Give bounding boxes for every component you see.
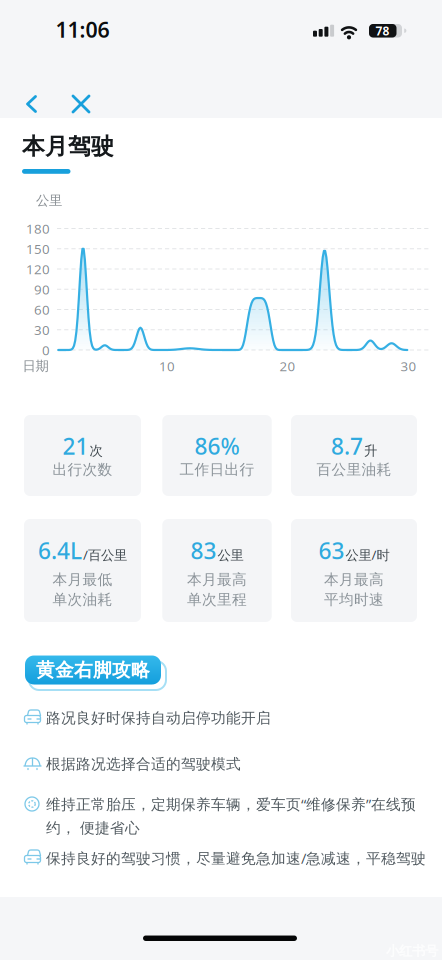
staticText: 30 [400, 357, 416, 375]
staticText: 90 [34, 280, 50, 298]
staticText: 本月最高 [187, 570, 247, 588]
staticText: 20 [279, 357, 295, 375]
staticText: 百公里油耗 [316, 460, 391, 478]
staticText: 公里 [36, 192, 62, 209]
staticText: 公里/时 [345, 546, 389, 563]
staticText: 83 [190, 535, 216, 565]
staticText: 日期 [22, 358, 48, 374]
staticText: 工作日出行 [179, 460, 254, 478]
staticText: 路况良好时保持自动启停功能开启 [46, 709, 271, 727]
staticText: 150 [26, 240, 50, 258]
staticText: 公里 [217, 547, 243, 564]
staticText: 11:06 [55, 15, 109, 44]
staticText: 120 [26, 260, 50, 278]
staticText: 保持良好的驾驶习惯，尽量避免急加速/急减速，平稳驾驶 [46, 848, 426, 868]
staticText: 升 [364, 443, 377, 459]
staticText: 86% [194, 431, 239, 461]
button[interactable]: 黄金右脚攻略 [25, 655, 161, 684]
staticText: 约， 便捷省心 [46, 819, 140, 837]
staticText: 63 [318, 535, 344, 565]
button[interactable]: Close [71, 94, 90, 113]
staticText: /百公里 [83, 546, 127, 563]
staticText: 6.4L [38, 535, 82, 565]
staticText: 78 [375, 23, 389, 39]
staticText: 0 [42, 341, 50, 359]
staticText: 21 [62, 431, 88, 461]
staticText: 次 [89, 443, 102, 459]
staticText: 本月驾驶 [22, 133, 114, 160]
staticText: 出行次数 [52, 460, 112, 478]
staticText: 8.7 [331, 431, 363, 461]
staticText: 平均时速 [324, 590, 384, 608]
staticText: 10 [159, 357, 175, 375]
staticText: 维持正常胎压，定期保养车辆，爱车页“维修保养”在线预 [46, 794, 416, 814]
button[interactable]: Back [24, 95, 42, 113]
staticText: 180 [26, 220, 50, 237]
staticText: 单次油耗 [52, 590, 112, 608]
staticText: 本月最高 [324, 570, 384, 588]
staticText: 单次里程 [187, 590, 247, 608]
staticText: 根据路况选择合适的驾驶模式 [46, 755, 241, 773]
staticText: 60 [34, 301, 50, 318]
staticText: 黄金右脚攻略 [36, 658, 150, 681]
staticText: 30 [34, 321, 50, 339]
staticText: 本月最低 [52, 570, 112, 588]
